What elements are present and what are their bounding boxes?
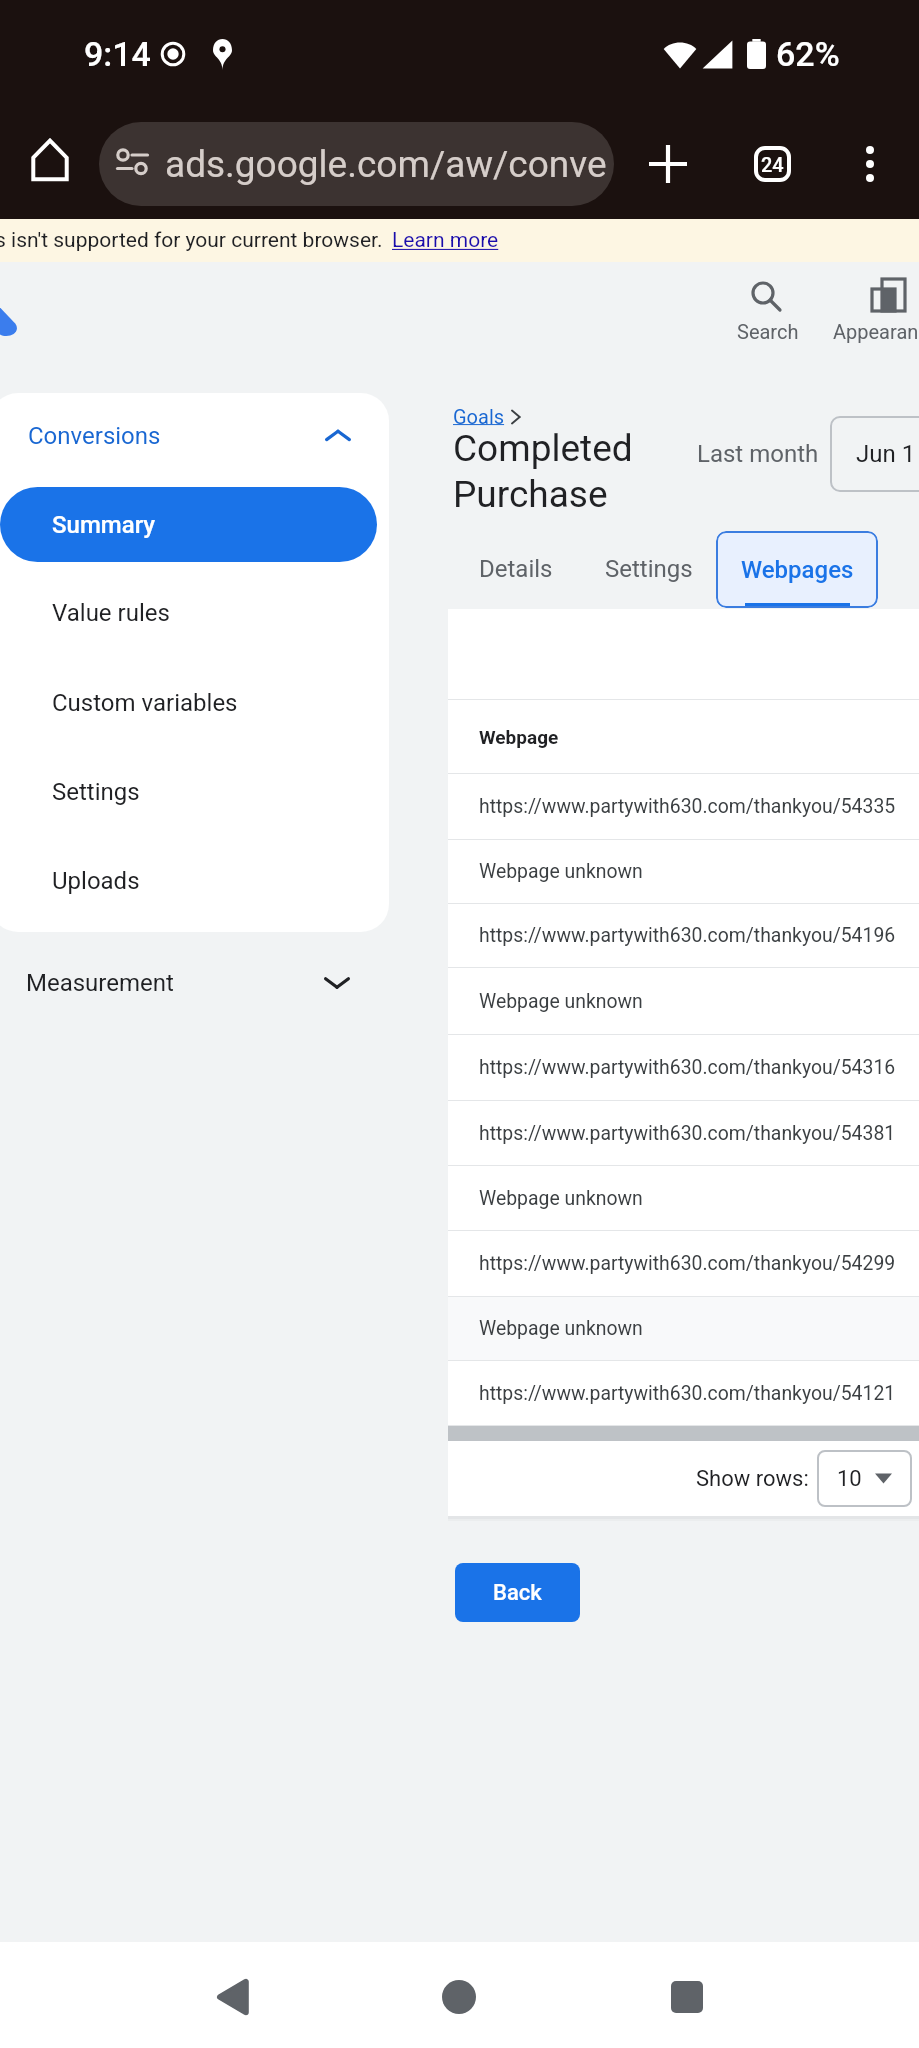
- button[interactable]: https://www.partywith630.com/thankyou/54…: [448, 1361, 919, 1425]
- button[interactable]: 10: [817, 1450, 912, 1507]
- button[interactable]: Measurement: [0, 943, 389, 1023]
- button[interactable]: https://www.partywith630.com/thankyou/54…: [448, 1035, 919, 1100]
- staticText: s isn't supported for your current brows…: [0, 228, 383, 253]
- staticText: Webpage: [479, 726, 559, 748]
- button[interactable]: Summary: [0, 487, 377, 562]
- staticText: Details: [479, 555, 553, 583]
- staticText: Webpage unknown: [479, 1317, 643, 1340]
- staticText: Show rows:: [696, 1466, 809, 1492]
- button[interactable]: Custom variables: [0, 659, 389, 747]
- staticText: Uploads: [52, 867, 140, 895]
- button[interactable]: Uploads: [0, 837, 389, 925]
- staticText: Jun 1: [856, 440, 916, 468]
- staticText: Summary: [52, 511, 156, 539]
- button[interactable]: Back: [186, 1942, 278, 2048]
- staticText: 62%: [776, 34, 840, 74]
- staticText: Conversions: [28, 422, 161, 450]
- button[interactable]: Jun 1: [830, 416, 919, 492]
- staticText: Search: [737, 320, 799, 343]
- staticText: ads.google.com/aw/conve: [165, 143, 607, 186]
- button[interactable]: Tabs, 24 open: [734, 126, 810, 202]
- button[interactable]: Webpage unknown: [448, 1297, 919, 1360]
- staticText: Last month: [697, 440, 819, 468]
- staticText: Goals: [453, 405, 505, 428]
- button[interactable]: Goals: [453, 405, 521, 428]
- button[interactable]: Appearan: [833, 275, 919, 359]
- button[interactable]: Webpage unknown: [448, 968, 919, 1034]
- staticText: Measurement: [26, 969, 174, 997]
- staticText: 24: [761, 153, 784, 176]
- staticText: Appearan: [833, 320, 919, 343]
- button[interactable]: Webpage unknown: [448, 1166, 919, 1230]
- button[interactable]: Home: [12, 126, 88, 202]
- staticText: Webpage unknown: [479, 1187, 643, 1210]
- button[interactable]: https://www.partywith630.com/thankyou/54…: [448, 774, 919, 839]
- staticText: Webpage unknown: [479, 860, 643, 883]
- button[interactable]: Learn more: [392, 228, 499, 253]
- staticText: https://www.partywith630.com/thankyou/54…: [479, 795, 896, 818]
- button[interactable]: New tab: [630, 126, 706, 202]
- button[interactable]: Webpage: [448, 700, 919, 773]
- staticText: Completed Purchase: [453, 427, 633, 516]
- staticText: Settings: [52, 778, 140, 806]
- staticText: Webpage unknown: [479, 990, 643, 1013]
- button[interactable]: More options: [845, 139, 895, 189]
- button[interactable]: Value rules: [0, 569, 389, 657]
- button[interactable]: https://www.partywith630.com/thankyou/54…: [448, 1231, 919, 1296]
- button[interactable]: Recent apps: [641, 1942, 733, 2048]
- button[interactable]: Webpages: [716, 531, 878, 608]
- button[interactable]: Conversions: [0, 405, 389, 467]
- staticText: Value rules: [52, 599, 170, 627]
- button[interactable]: Search: [737, 275, 847, 359]
- button[interactable]: Webpage unknown: [448, 840, 919, 903]
- staticText: https://www.partywith630.com/thankyou/54…: [479, 1382, 896, 1405]
- staticText: 10: [837, 1466, 862, 1492]
- staticText: https://www.partywith630.com/thankyou/54…: [479, 1056, 896, 1079]
- button[interactable]: https://www.partywith630.com/thankyou/54…: [448, 904, 919, 967]
- button[interactable]: Settings: [585, 530, 713, 607]
- staticText: https://www.partywith630.com/thankyou/54…: [479, 1252, 896, 1275]
- button[interactable]: https://www.partywith630.com/thankyou/54…: [448, 1101, 919, 1165]
- staticText: Webpages: [741, 556, 854, 584]
- staticText: Back: [493, 1580, 542, 1606]
- staticText: Settings: [605, 555, 693, 583]
- staticText: https://www.partywith630.com/thankyou/54…: [479, 924, 896, 947]
- button[interactable]: Details: [459, 530, 573, 607]
- staticText: https://www.partywith630.com/thankyou/54…: [479, 1122, 896, 1145]
- button[interactable]: Settings: [0, 748, 389, 836]
- staticText: 9:14: [84, 34, 151, 74]
- staticText: Custom variables: [52, 689, 238, 717]
- button[interactable]: Home: [413, 1942, 505, 2048]
- button[interactable]: Back: [455, 1563, 580, 1622]
- button[interactable]: ads.google.com/aw/conve: [99, 122, 614, 206]
